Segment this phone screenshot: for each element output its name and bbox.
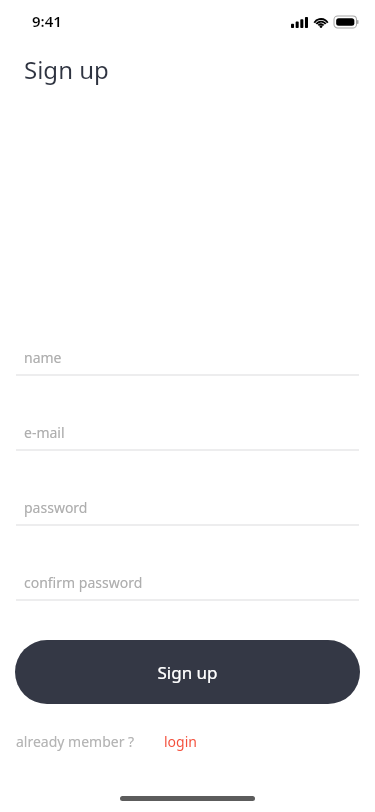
staticText: Sign up — [157, 661, 218, 684]
button[interactable]: login — [164, 732, 197, 751]
staticText: already member ? — [16, 732, 135, 751]
staticText: 9:41 — [32, 11, 62, 31]
staticText: confirm password — [24, 573, 143, 592]
staticText: password — [24, 498, 88, 517]
staticText: Sign up — [24, 53, 109, 86]
staticText: e-mail — [24, 423, 65, 442]
button[interactable]: Sign up — [15, 640, 360, 704]
staticText: name — [24, 348, 62, 367]
button[interactable]: confirm password — [0, 570, 375, 601]
staticText: login — [164, 732, 197, 751]
button[interactable]: name — [0, 345, 375, 376]
button[interactable]: password — [0, 495, 375, 526]
button[interactable]: e-mail — [0, 420, 375, 451]
